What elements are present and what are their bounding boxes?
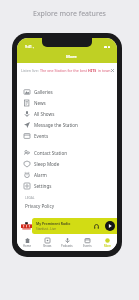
button[interactable]: More [97,235,117,251]
staticText: Listen live: [21,68,40,73]
button[interactable]: Sleep Mode [17,158,117,169]
staticText: Message the Station [34,122,78,128]
staticText: Alarm [34,172,47,178]
button[interactable]: Privacy Policy [17,203,54,209]
button[interactable]: Station logo [21,221,32,231]
staticText: More [66,54,77,60]
staticText: My Prominent Radio [36,221,71,226]
staticText: Sleep Mode [34,161,60,167]
staticText: More [104,244,111,248]
button[interactable]: Galleries [17,86,117,97]
staticText: LEGAL [25,196,35,200]
staticText: Podcasts [61,244,73,248]
staticText: Shows [43,244,52,248]
button[interactable]: Play [105,221,115,231]
button[interactable]: Message the Station [17,119,117,130]
button[interactable]: Contact Station [17,147,117,158]
staticText: Explore more features [33,9,106,19]
staticText: Events [34,133,49,139]
staticText: Contact Station [34,150,68,156]
button[interactable]: My Prominent Radio [32,218,117,234]
staticText: in town [97,68,111,73]
staticText: HITS [88,68,97,73]
staticText: 9:41 ₊ [25,44,34,49]
button[interactable]: Shows [37,235,57,251]
staticText: Home [23,244,31,248]
staticText: News [34,100,46,106]
button[interactable]: Home [17,235,37,251]
staticText: All Shows [34,111,55,117]
staticText: Galleries [34,89,53,95]
button[interactable]: Alarm [17,169,117,180]
button[interactable]: Podcasts [57,235,77,251]
button[interactable]: Headphones [92,222,100,230]
staticText: The one Station for the best [40,68,88,73]
button[interactable]: All Shows [17,108,117,119]
button[interactable]: Events [17,130,117,141]
staticText: Stardust - Live [36,227,56,231]
button[interactable]: Close banner [111,67,114,73]
button[interactable]: Events [77,235,97,251]
button[interactable]: Settings [17,180,117,191]
staticText: Settings [34,183,52,189]
button[interactable]: News [17,97,117,108]
staticText: Events [83,244,92,248]
